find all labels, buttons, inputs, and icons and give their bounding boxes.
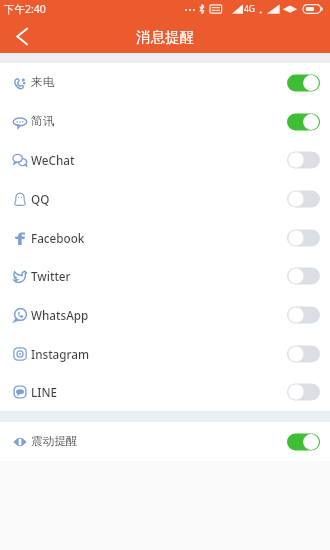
button[interactable]: QQ [0,179,330,218]
button[interactable]: LINE [0,373,330,411]
staticText: 4G [244,3,256,15]
button[interactable]: Facebook [0,218,330,257]
button[interactable]: Twitter [0,257,330,295]
button[interactable]: WhatsApp [0,295,330,334]
staticText: 震动提醒 [31,434,78,449]
staticText: WeChat [31,152,75,168]
button[interactable]: Toggle [287,433,320,451]
button[interactable]: Back [0,18,42,53]
button[interactable]: Toggle [287,113,320,131]
button[interactable]: Toggle [287,267,320,285]
button[interactable]: 简讯 [0,102,330,141]
staticText: 消息提醒 [136,28,194,46]
staticText: LINE [31,384,57,400]
button[interactable]: Toggle [287,383,320,401]
button[interactable]: Instagram [0,334,330,373]
button[interactable]: 来电 [0,63,330,102]
staticText: Facebook [31,230,85,246]
staticText: 简讯 [31,114,55,129]
button[interactable]: 震动提醒 [0,422,330,461]
staticText: WhatsApp [31,307,89,323]
button[interactable]: Toggle [287,306,320,324]
staticText: 下午2:40 [4,2,46,16]
staticText: Twitter [31,268,71,284]
button[interactable]: Toggle [287,190,320,208]
staticText: Instagram [31,346,90,362]
button[interactable]: Toggle [287,74,320,92]
staticText: QQ [31,191,50,207]
staticText: 来电 [31,75,55,90]
button[interactable]: Toggle [287,151,320,169]
button[interactable]: Toggle [287,229,320,247]
button[interactable]: Toggle [287,345,320,363]
button[interactable]: WeChat [0,141,330,179]
